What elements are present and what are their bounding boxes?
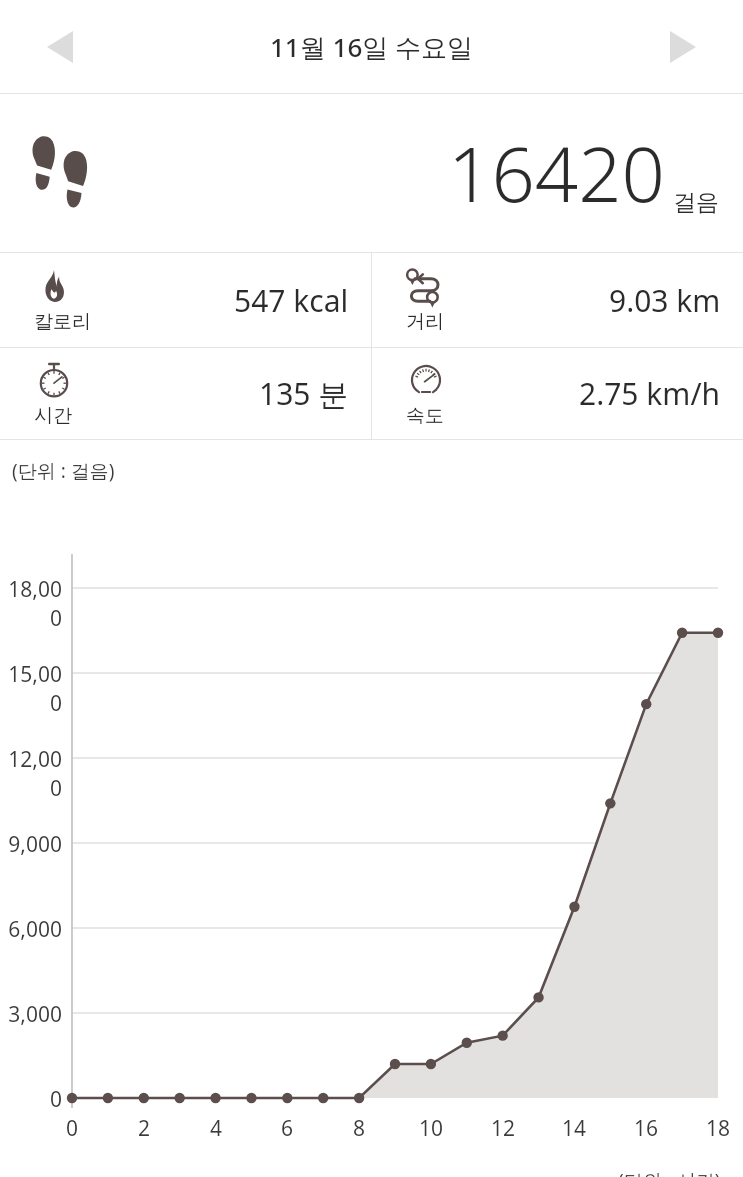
staticText: 칼로리 [34,310,91,334]
button[interactable]: 시간 [0,348,371,439]
staticText: 16 [626,1114,666,1143]
staticText: 11월 16일 수요일 [270,29,474,65]
staticText: 12,000 [2,745,62,803]
staticText: 547 kcal [234,280,349,321]
staticText: 18,000 [2,575,62,633]
staticText: (단위 : 시간) [618,1168,721,1177]
staticText: 135 분 [259,373,349,414]
staticText: 12 [483,1114,523,1143]
button[interactable]: 속도 [372,348,743,439]
staticText: 6 [267,1114,307,1143]
staticText: 9,000 [2,830,62,859]
button[interactable]: Next day [645,15,721,79]
staticText: 8 [339,1114,379,1143]
staticText: (단위 : 걸음) [12,458,115,484]
button[interactable]: 칼로리 [0,253,371,347]
staticText: 3,000 [2,1000,62,1029]
staticText: 시간 [34,404,72,428]
staticText: 16420 [448,121,665,225]
staticText: 거리 [406,310,444,334]
staticText: 10 [411,1114,451,1143]
staticText: 6,000 [2,915,62,944]
staticText: 0 [2,1085,62,1114]
staticText: 걸음 [673,188,719,217]
button[interactable]: Previous day [22,15,98,79]
staticText: 2.75 km/h [579,373,721,414]
button[interactable]: 거리 [372,253,743,347]
staticText: 4 [196,1114,236,1143]
staticText: 속도 [406,404,444,428]
staticText: 14 [554,1114,594,1143]
staticText: 9.03 km [609,280,721,321]
staticText: 18 [698,1114,738,1143]
staticText: 0 [52,1114,92,1143]
staticText: 2 [124,1114,164,1143]
button[interactable]: 16420 [0,94,743,252]
staticText: 15,000 [2,660,62,718]
